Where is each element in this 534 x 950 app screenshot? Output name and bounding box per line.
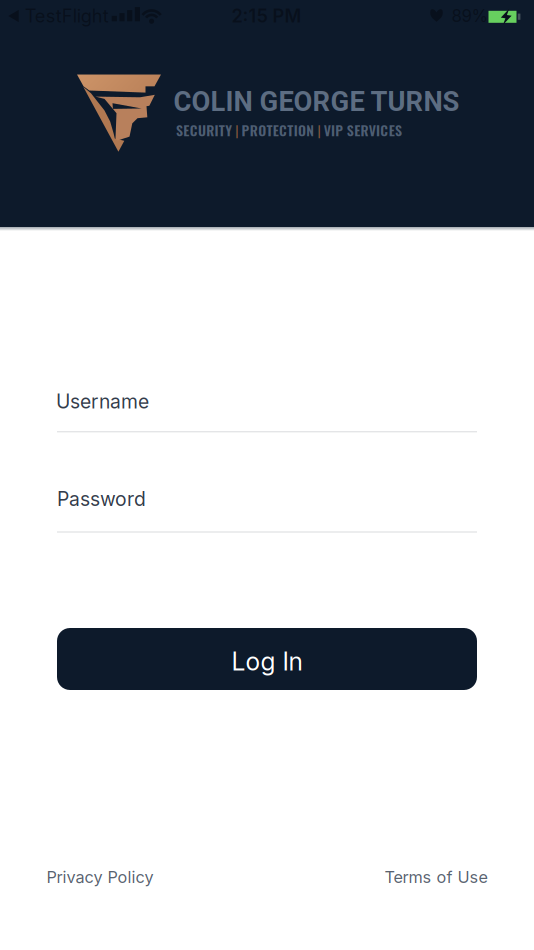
button[interactable]: Log In — [57, 628, 477, 690]
staticText: | — [317, 120, 320, 140]
staticText: 2:15 PM — [231, 5, 301, 27]
staticText: 89% — [451, 6, 487, 26]
staticText: TestFlight — [25, 5, 109, 27]
button[interactable]: Back to TestFlight — [8, 5, 109, 27]
staticText: COLIN GEORGE TURNS — [173, 86, 459, 118]
button[interactable]: Privacy Policy — [46, 867, 153, 887]
staticText: PROTECTION — [242, 120, 314, 140]
staticText: Log In — [231, 646, 302, 676]
staticText: Terms of Use — [384, 867, 487, 887]
staticText: | — [235, 120, 238, 140]
staticText: VIP SERVICES — [324, 120, 402, 140]
staticText: Password — [57, 487, 146, 511]
button[interactable]: Terms of Use — [384, 867, 487, 887]
staticText: SECURITY — [176, 120, 232, 140]
staticText: Username — [56, 390, 149, 413]
staticText: Privacy Policy — [46, 867, 153, 887]
